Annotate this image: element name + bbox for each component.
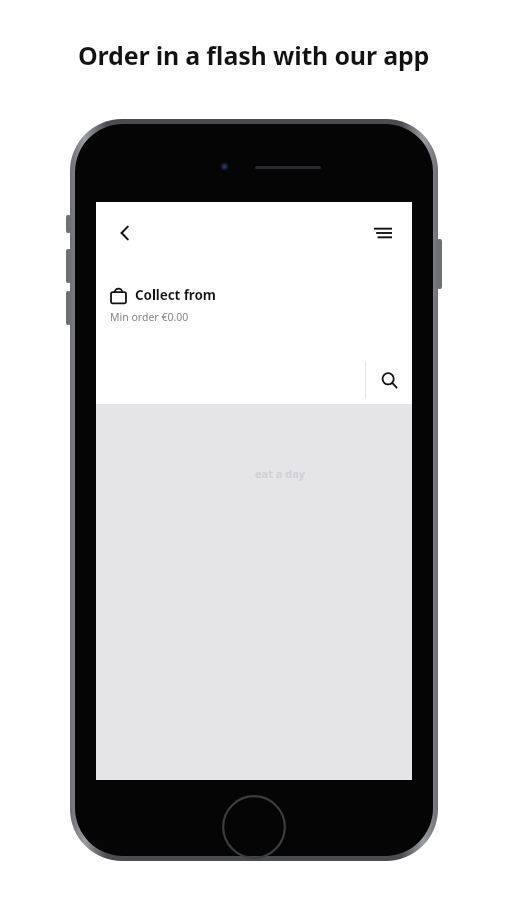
- button[interactable]: Back: [104, 212, 146, 254]
- staticText: Order in a flash with our app: [78, 38, 430, 72]
- button[interactable]: Collect from: [110, 286, 412, 304]
- staticText: eat a day: [255, 466, 306, 481]
- button[interactable]: Search: [366, 356, 412, 404]
- staticText: Min order €0.00: [110, 310, 189, 324]
- button[interactable]: Menu: [362, 212, 404, 254]
- staticText: Collect from: [135, 286, 216, 304]
